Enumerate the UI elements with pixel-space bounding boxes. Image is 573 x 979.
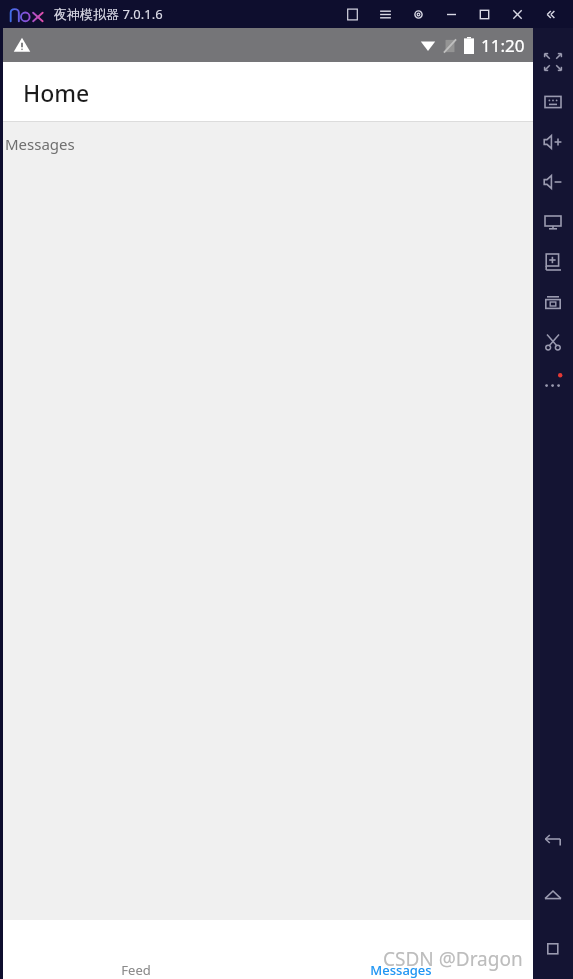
staticText: Messages	[370, 961, 432, 979]
button[interactable]: Collapse	[534, 0, 567, 28]
button[interactable]: Home	[533, 875, 573, 915]
button[interactable]: Back	[533, 821, 573, 861]
button[interactable]: Display	[533, 202, 573, 242]
staticText: 夜神模拟器 7.0.1.6	[54, 5, 163, 23]
button[interactable]: Menu	[369, 0, 402, 28]
button[interactable]: Screenshot	[533, 322, 573, 362]
button[interactable]: Messages	[268, 920, 533, 979]
staticText: 11:20	[481, 34, 525, 57]
button[interactable]: Minimize	[435, 0, 468, 28]
staticText: Messages	[5, 134, 75, 154]
button[interactable]: Maximize	[468, 0, 501, 28]
staticText: Feed	[121, 961, 151, 979]
button[interactable]: Feed	[3, 920, 268, 979]
staticText: Home	[23, 77, 90, 108]
button[interactable]: Settings	[402, 0, 435, 28]
button[interactable]: Keyboard	[533, 82, 573, 122]
button[interactable]: Fullscreen	[533, 42, 573, 82]
button[interactable]: Close	[501, 0, 534, 28]
button[interactable]: Recents	[533, 929, 573, 969]
button[interactable]: Volume up	[533, 122, 573, 162]
button[interactable]: Install APK	[533, 242, 573, 282]
button[interactable]: Volume down	[533, 162, 573, 202]
button[interactable]: Help	[336, 0, 369, 28]
button[interactable]: Shared folder	[533, 282, 573, 322]
staticText: CSDN @Dragon	[383, 946, 523, 972]
button[interactable]: More	[533, 362, 573, 402]
